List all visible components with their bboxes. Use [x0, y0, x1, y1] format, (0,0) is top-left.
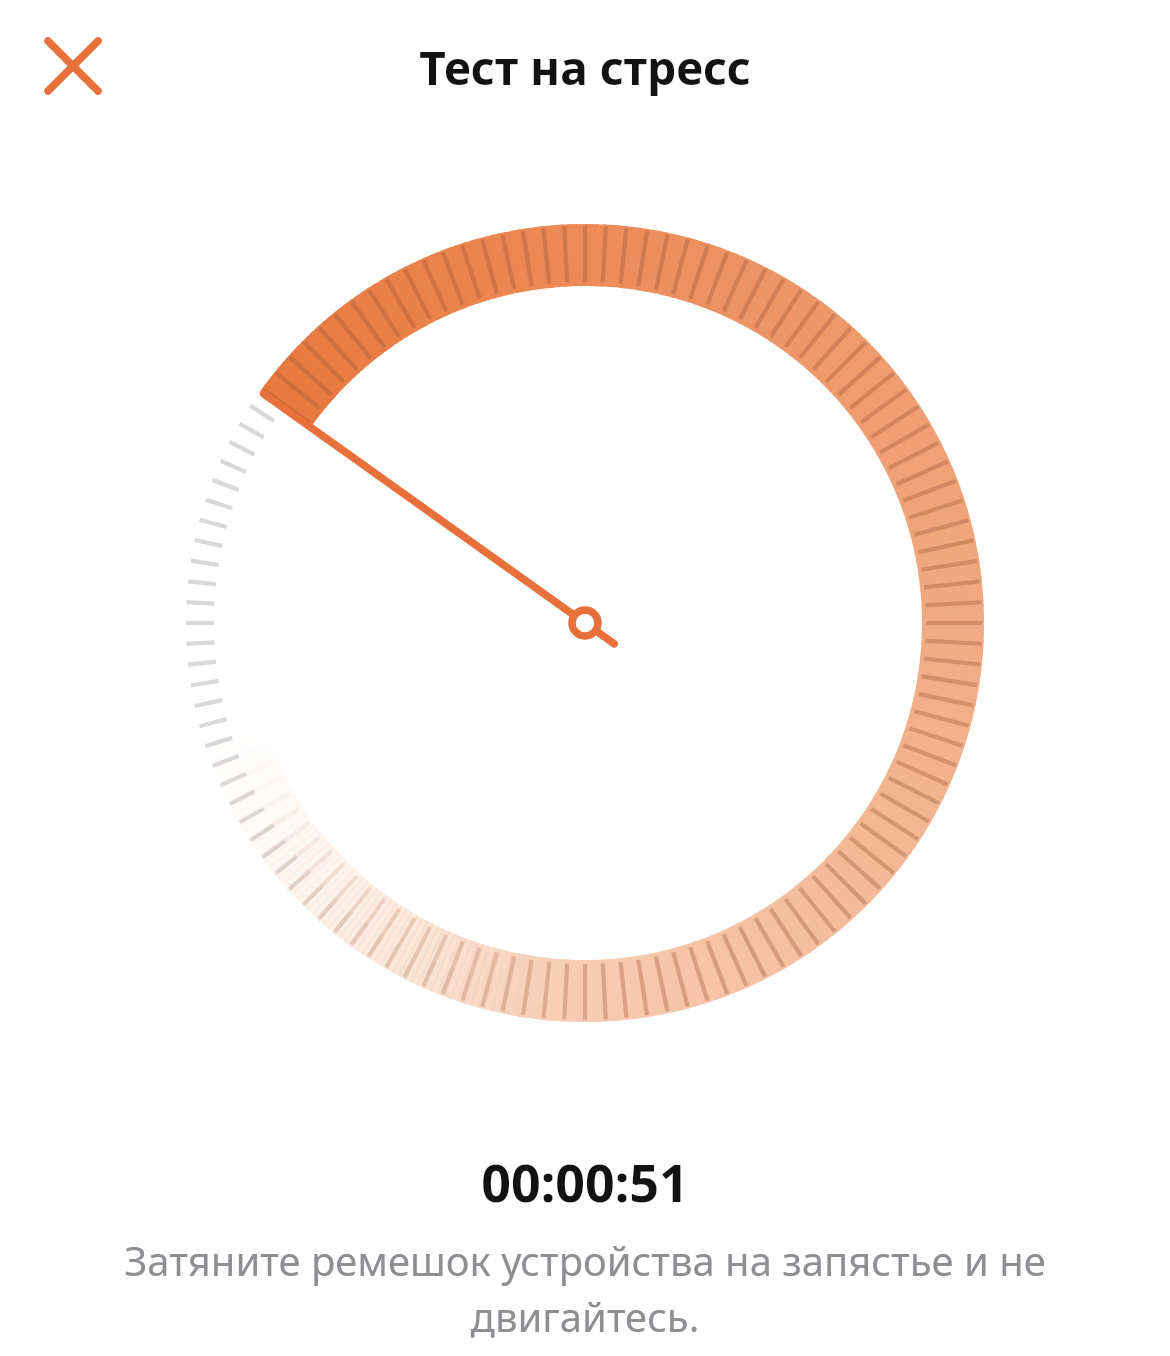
staticText: 00:00:51 — [481, 1146, 689, 1217]
staticText: Тест на стресс — [419, 36, 751, 99]
staticText: Затяните ремешок устройства на запястье … — [110, 1233, 1060, 1344]
button[interactable]: Закрыть — [24, 17, 122, 115]
